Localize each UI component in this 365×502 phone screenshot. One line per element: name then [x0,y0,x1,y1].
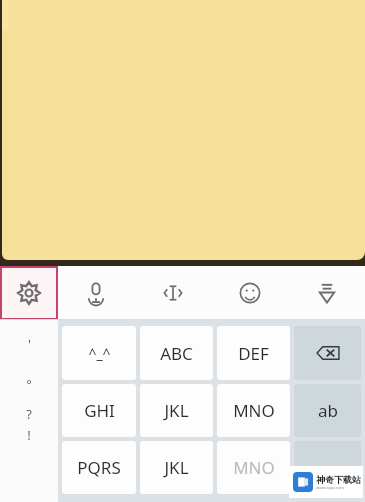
staticText: ! [27,426,31,444]
staticText: ? [26,405,32,423]
staticText: ° [26,375,32,393]
button[interactable]: ? [0,401,58,426]
button[interactable]: ab [294,384,361,437]
staticText: 神奇下载站 [316,474,361,485]
button[interactable]: Cursor control [134,266,211,320]
button[interactable]: ! [0,426,58,444]
staticText: DEF [238,342,269,365]
button[interactable]: ' [0,320,58,502]
staticText: ab [318,399,338,422]
staticText: PQRS [77,456,121,479]
staticText: JKL [164,399,189,422]
button[interactable]: ^_^ [62,326,136,380]
button[interactable]: MNO [217,441,290,494]
button[interactable]: GHI [62,384,136,437]
staticText: JKL [164,456,189,479]
button[interactable]: MNO [217,384,290,437]
button[interactable]: Backspace [294,326,361,380]
button[interactable]: JKL [140,441,213,494]
staticText: ABC [160,342,193,365]
staticText: ' [28,335,31,353]
button[interactable] [294,441,361,494]
button[interactable]: JKL [140,384,213,437]
button[interactable]: ' [0,320,58,367]
button[interactable]: ° [0,367,58,401]
button[interactable]: ABC [140,326,213,380]
staticText: ^_^ [88,344,111,363]
staticText: MNO [233,456,275,479]
staticText: MNO [233,399,275,422]
staticText: GHI [84,399,115,422]
staticText: www.sqxz.com [316,485,344,490]
button[interactable]: Settings [0,266,58,320]
button[interactable]: DEF [217,326,290,380]
button[interactable]: Voice input [58,266,134,320]
button[interactable]: Hide keyboard [288,266,365,320]
button[interactable]: PQRS [62,441,136,494]
button[interactable]: Emoji [211,266,288,320]
